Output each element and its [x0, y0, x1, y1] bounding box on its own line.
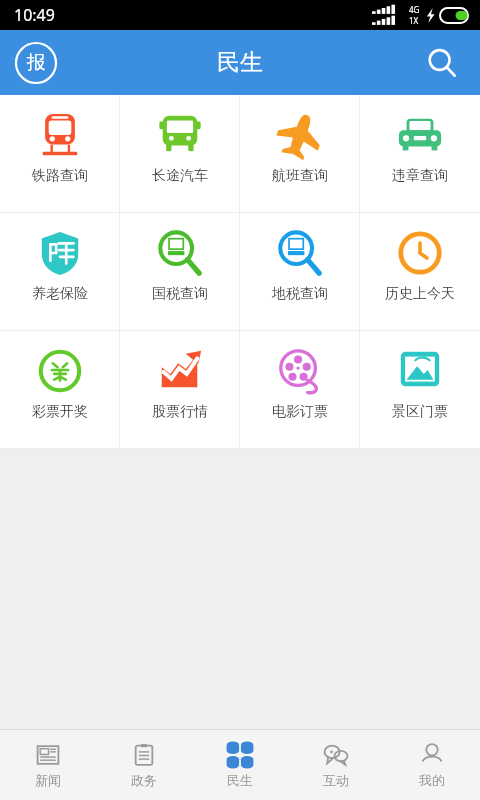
staticText: 彩票开奖 — [32, 403, 88, 421]
staticText: 地税查询 — [272, 285, 328, 303]
button[interactable]: 景区门票 — [360, 331, 480, 448]
staticText: 报 — [27, 51, 46, 75]
staticText: 新闻 — [35, 772, 61, 788]
staticText: 国税查询 — [152, 285, 208, 303]
staticText: 长途汽车 — [152, 167, 208, 185]
staticText: 电影订票 — [272, 403, 328, 421]
button[interactable]: 养老保险 — [0, 213, 120, 330]
button[interactable]: 我的 — [384, 730, 480, 800]
button[interactable]: Logo — [14, 41, 58, 85]
staticText: 违章查询 — [392, 167, 448, 185]
button[interactable]: 历史上今天 — [360, 213, 480, 330]
staticText: 10:49 — [14, 4, 55, 26]
button[interactable]: 股票行情 — [120, 331, 240, 448]
staticText: 民生 — [217, 48, 263, 77]
staticText: 我的 — [419, 772, 445, 788]
button[interactable]: 违章查询 — [360, 95, 480, 212]
button[interactable]: 国税查询 — [120, 213, 240, 330]
staticText: 铁路查询 — [32, 167, 88, 185]
button[interactable]: 长途汽车 — [120, 95, 240, 212]
button[interactable]: 彩票开奖 — [0, 331, 120, 448]
staticText: 养老保险 — [32, 285, 88, 303]
staticText: 股票行情 — [152, 403, 208, 421]
staticText: 民生 — [227, 772, 253, 788]
button[interactable]: 铁路查询 — [0, 95, 120, 212]
staticText: 4G — [409, 4, 420, 15]
button[interactable]: 民生 — [192, 730, 288, 800]
button[interactable]: Search — [420, 41, 464, 85]
button[interactable]: 新闻 — [0, 730, 96, 800]
button[interactable]: 电影订票 — [240, 331, 360, 448]
staticText: 航班查询 — [272, 167, 328, 185]
staticText: 1X — [409, 15, 419, 26]
staticText: 互动 — [323, 772, 349, 788]
staticText: 景区门票 — [392, 403, 448, 421]
button[interactable]: 地税查询 — [240, 213, 360, 330]
button[interactable]: 政务 — [96, 730, 192, 800]
staticText: 政务 — [131, 772, 157, 788]
button[interactable]: 航班查询 — [240, 95, 360, 212]
staticText: 历史上今天 — [385, 285, 455, 303]
button[interactable]: 互动 — [288, 730, 384, 800]
